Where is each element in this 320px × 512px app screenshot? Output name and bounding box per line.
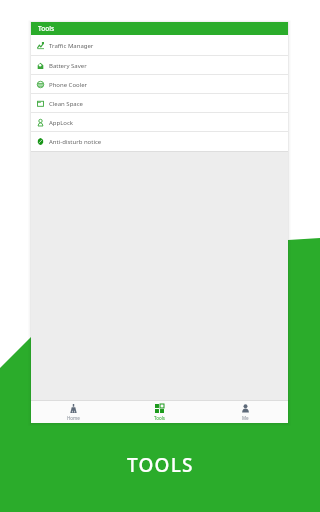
button[interactable]: Battery Saver [31, 56, 288, 75]
staticText: Home [67, 415, 80, 421]
button[interactable]: Me [202, 401, 288, 423]
staticText: Traffic Manager [49, 42, 94, 50]
staticText: Battery Saver [49, 62, 87, 70]
staticText: Clean Space [49, 100, 83, 108]
button[interactable]: Tools [116, 401, 202, 423]
staticText: AppLock [49, 119, 74, 127]
button[interactable]: Anti-disturb notice [31, 132, 288, 151]
button[interactable]: Traffic Manager [31, 35, 288, 56]
staticText: Me [242, 415, 249, 421]
staticText: Tools [154, 415, 165, 421]
button[interactable]: AppLock [31, 113, 288, 132]
button[interactable]: Phone Cooler [31, 75, 288, 94]
staticText: Tools [38, 24, 55, 33]
button[interactable]: Home [31, 401, 116, 423]
button[interactable]: Tools [31, 22, 288, 35]
staticText: Anti-disturb notice [49, 138, 102, 146]
staticText: Phone Cooler [49, 81, 88, 89]
staticText: TOOLS [127, 452, 194, 478]
button[interactable]: Clean Space [31, 94, 288, 113]
